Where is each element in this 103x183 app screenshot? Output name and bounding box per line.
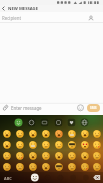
button[interactable]	[39, 150, 52, 161]
button[interactable]	[39, 161, 52, 172]
staticText: Enter message	[11, 105, 42, 111]
button[interactable]	[78, 150, 91, 161]
button[interactable]	[30, 173, 41, 183]
button[interactable]	[26, 128, 39, 139]
button[interactable]: ABC	[2, 174, 14, 182]
button[interactable]	[13, 128, 26, 139]
button[interactable]	[78, 161, 91, 172]
button[interactable]	[65, 150, 78, 161]
staticText: ABC	[4, 176, 12, 181]
button[interactable]	[52, 150, 65, 161]
button[interactable]: SMS	[87, 104, 100, 112]
button[interactable]	[14, 118, 23, 127]
button[interactable]	[41, 173, 52, 183]
button[interactable]	[67, 118, 76, 127]
button[interactable]	[52, 173, 63, 183]
button[interactable]: Recipient	[0, 12, 103, 23]
button[interactable]	[40, 118, 49, 127]
button[interactable]	[52, 128, 65, 139]
button[interactable]	[65, 139, 78, 150]
button[interactable]	[13, 150, 26, 161]
button[interactable]	[26, 150, 39, 161]
button[interactable]: NEW MESSAGE	[0, 5, 103, 12]
button[interactable]	[0, 161, 13, 172]
button[interactable]	[91, 150, 103, 161]
button[interactable]	[0, 128, 13, 139]
button[interactable]	[52, 139, 65, 150]
button[interactable]	[39, 128, 52, 139]
button[interactable]	[39, 139, 52, 150]
button[interactable]	[63, 173, 74, 183]
button[interactable]	[26, 139, 39, 150]
button[interactable]	[13, 139, 26, 150]
staticText: NEW MESSAGE	[8, 6, 38, 12]
button[interactable]	[78, 128, 91, 139]
button[interactable]	[54, 118, 63, 127]
button[interactable]	[52, 161, 65, 172]
button[interactable]	[19, 173, 30, 183]
button[interactable]	[80, 118, 89, 127]
button[interactable]	[91, 128, 103, 139]
button[interactable]	[26, 161, 39, 172]
button[interactable]	[74, 173, 85, 183]
staticText: SMS	[90, 106, 97, 110]
button[interactable]	[27, 118, 36, 127]
button[interactable]	[65, 161, 78, 172]
staticText: Recipient	[2, 15, 22, 21]
button[interactable]	[0, 139, 13, 150]
button[interactable]	[13, 161, 26, 172]
button[interactable]	[91, 139, 103, 150]
button[interactable]	[0, 150, 13, 161]
button[interactable]	[65, 128, 78, 139]
button[interactable]	[78, 139, 91, 150]
button[interactable]	[91, 173, 103, 183]
button[interactable]	[91, 161, 103, 172]
